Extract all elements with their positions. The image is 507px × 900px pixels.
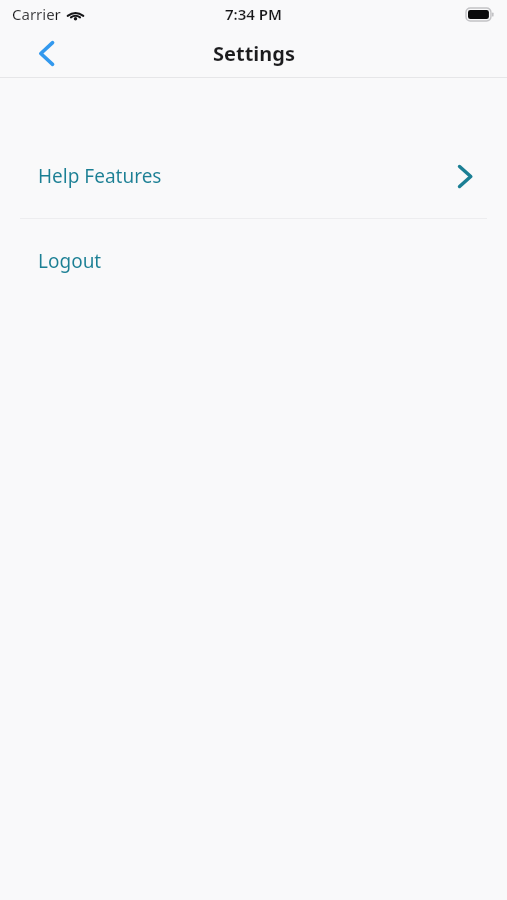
staticText: 7:34 PM xyxy=(225,4,282,24)
staticText: Carrier xyxy=(12,4,61,24)
staticText: Help Features xyxy=(38,163,162,189)
button[interactable]: Back xyxy=(24,31,68,75)
staticText: Logout xyxy=(38,248,102,274)
staticText: Settings xyxy=(213,40,295,67)
button[interactable]: Logout xyxy=(0,219,507,303)
button[interactable]: Help Features xyxy=(0,134,507,218)
